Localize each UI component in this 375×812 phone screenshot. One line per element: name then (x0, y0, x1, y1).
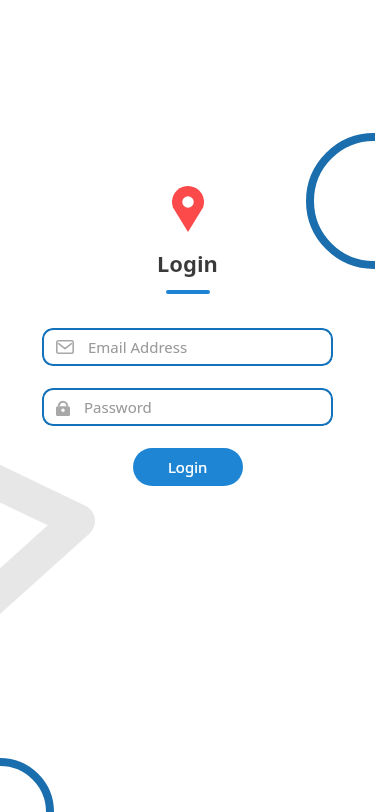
button[interactable]: Password (42, 388, 333, 426)
other: Password (56, 399, 70, 416)
button[interactable]: Login (133, 448, 243, 486)
staticText: Login (157, 248, 218, 278)
other: Email (56, 340, 74, 354)
staticText: Password (84, 397, 152, 417)
staticText: Login (168, 457, 208, 477)
staticText: Email Address (88, 337, 188, 357)
button[interactable]: Email (42, 328, 333, 366)
other: App logo (172, 186, 204, 232)
